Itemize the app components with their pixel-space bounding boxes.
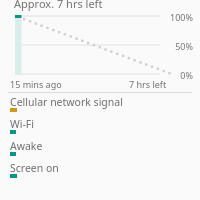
staticText: Cellular network signal [10, 95, 123, 109]
staticText: 0% [180, 69, 193, 81]
button[interactable]: Wi-Fi [0, 117, 200, 139]
button[interactable]: Cellular network signal [0, 95, 200, 117]
button[interactable]: Screen on [0, 161, 200, 183]
staticText: Approx. 7 hrs left [14, 0, 103, 11]
staticText: Awake [10, 139, 43, 153]
staticText: 100% [170, 11, 193, 23]
staticText: 7 hrs left [129, 78, 167, 90]
staticText: Wi-Fi [10, 117, 35, 131]
staticText: 50% [175, 40, 193, 52]
staticText: Screen on [10, 161, 59, 175]
staticText: 15 mins ago [10, 78, 62, 90]
button[interactable]: Awake [0, 139, 200, 161]
